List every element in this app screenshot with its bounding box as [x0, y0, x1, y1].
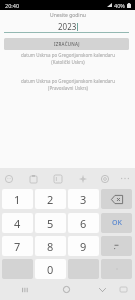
button[interactable]: Stickers: [49, 168, 67, 189]
button[interactable]: 9: [68, 236, 99, 256]
button[interactable]: Home: [57, 279, 75, 300]
button[interactable]: Recents: [16, 279, 34, 300]
button[interactable]: Clipboard: [24, 168, 42, 189]
button[interactable]: OK: [101, 213, 132, 233]
staticText: 0: [47, 262, 54, 277]
button[interactable]: 4: [2, 213, 33, 233]
button[interactable]: 5: [35, 213, 66, 233]
staticText: OK: [112, 218, 122, 228]
button[interactable]: IZRAČUNAJ: [4, 38, 129, 50]
staticText: datum Uskrsa po Gregorijanskom kalendaru…: [21, 52, 115, 65]
staticText: 9: [80, 239, 87, 254]
staticText: Unesite godinu: [50, 12, 86, 19]
staticText: 3: [80, 192, 87, 207]
staticText: 6: [80, 216, 87, 231]
staticText: 40%: [114, 2, 125, 9]
button[interactable]: Settings: [96, 168, 114, 189]
staticText: 8: [47, 239, 54, 254]
button[interactable]: 7: [2, 236, 33, 256]
button[interactable]: Punctuation: [101, 236, 132, 256]
button[interactable]: Voice input: [74, 168, 92, 189]
staticText: 2023: [58, 21, 77, 32]
staticText: 7: [14, 239, 21, 254]
button[interactable]: Back: [93, 279, 111, 300]
button[interactable]: 2: [35, 189, 66, 209]
staticText: 5: [47, 216, 54, 231]
staticText: 20:40: [5, 2, 20, 9]
button[interactable]: 1: [2, 189, 33, 209]
staticText: 2: [47, 192, 54, 207]
button[interactable]: 6: [68, 213, 99, 233]
button[interactable]: Emoji: [0, 168, 18, 189]
button[interactable]: More options: [116, 168, 134, 189]
staticText: datum Uskrsa po Gregorijanskom kalendaru…: [21, 78, 115, 91]
button[interactable]: Change keyboard: [114, 279, 132, 300]
staticText: 4: [14, 216, 21, 231]
button[interactable]: 8: [35, 236, 66, 256]
button[interactable]: 3: [68, 189, 99, 209]
staticText: IZRAČUNAJ: [54, 41, 80, 47]
staticText: 1: [14, 192, 21, 207]
button[interactable]: Backspace: [101, 189, 132, 209]
button[interactable]: 0: [35, 259, 66, 279]
